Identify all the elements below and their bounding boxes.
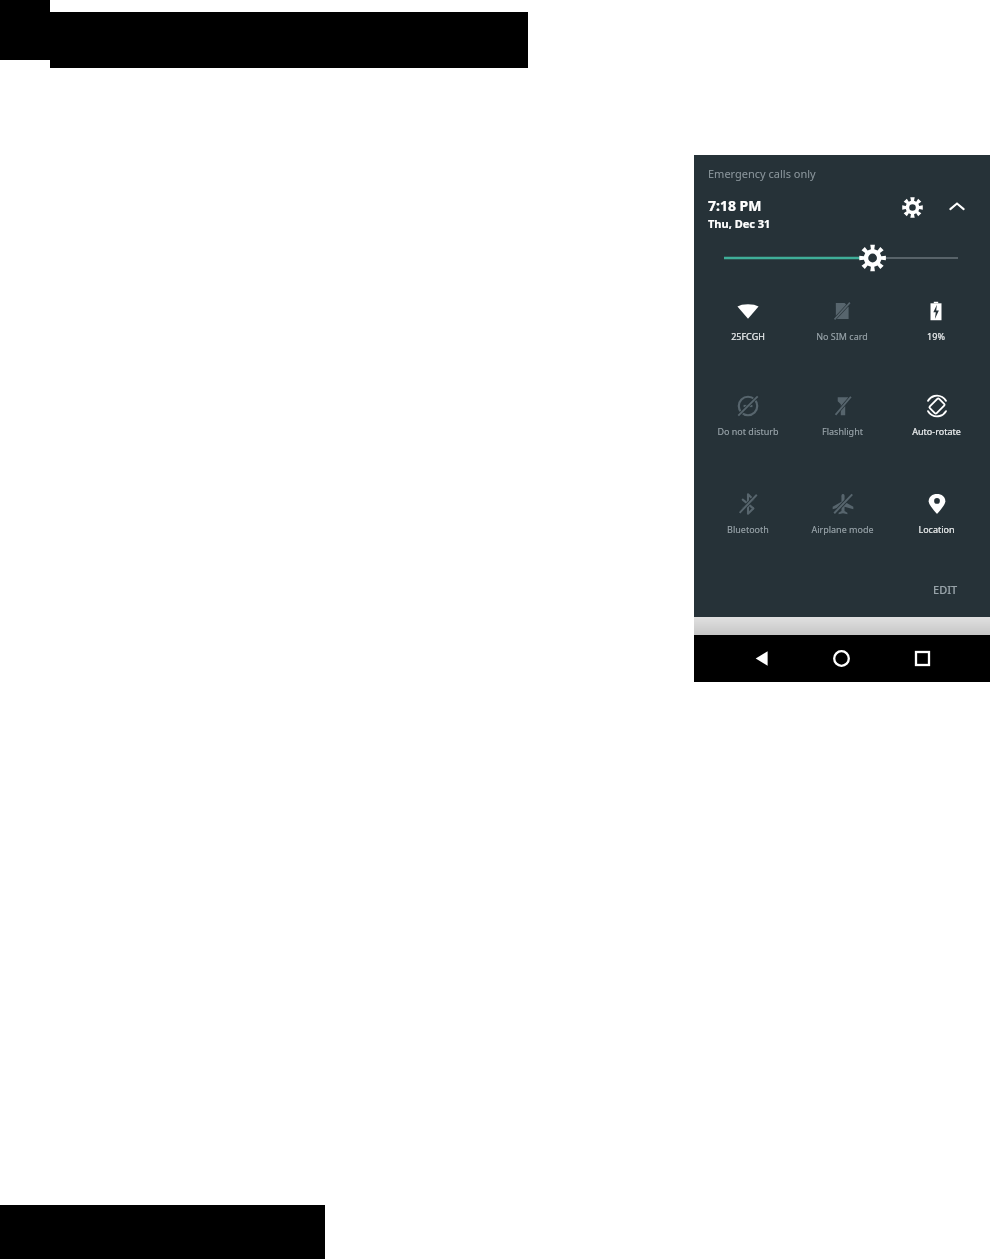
button[interactable]: Do not disturb <box>702 395 794 457</box>
button[interactable]: Recent apps <box>904 640 941 677</box>
button[interactable]: Airplane mode <box>796 493 888 555</box>
button[interactable]: Location <box>890 493 982 555</box>
staticText: Bluetooth <box>727 523 769 535</box>
staticText: Thu, Dec 31 <box>708 216 771 231</box>
staticText: Flashlight <box>822 425 863 437</box>
staticText: Airplane mode <box>811 523 874 535</box>
staticText: 19% <box>927 330 945 342</box>
staticText: EDIT <box>933 582 958 597</box>
button[interactable]: Back <box>744 640 781 677</box>
staticText: Location <box>918 523 955 535</box>
button[interactable]: Home <box>823 640 860 677</box>
button[interactable]: Auto-rotate <box>890 395 982 457</box>
button[interactable]: No SIM card <box>796 300 888 362</box>
staticText: 7:18 PM <box>708 196 762 215</box>
button[interactable]: Bluetooth <box>702 493 794 555</box>
staticText: No SIM card <box>816 330 868 342</box>
staticText: Auto-rotate <box>912 425 961 437</box>
button[interactable]: Settings <box>893 188 931 226</box>
button[interactable]: 25FCGH <box>702 300 794 362</box>
button[interactable]: Brightness <box>710 240 974 276</box>
staticText: Emergency calls only <box>708 166 816 181</box>
button[interactable]: Collapse <box>938 188 976 226</box>
staticText: 25FCGH <box>731 330 765 342</box>
button[interactable]: EDIT <box>916 575 974 603</box>
button[interactable]: Flashlight <box>796 395 888 457</box>
button[interactable]: 19% <box>890 300 982 362</box>
staticText: Do not disturb <box>717 425 779 437</box>
